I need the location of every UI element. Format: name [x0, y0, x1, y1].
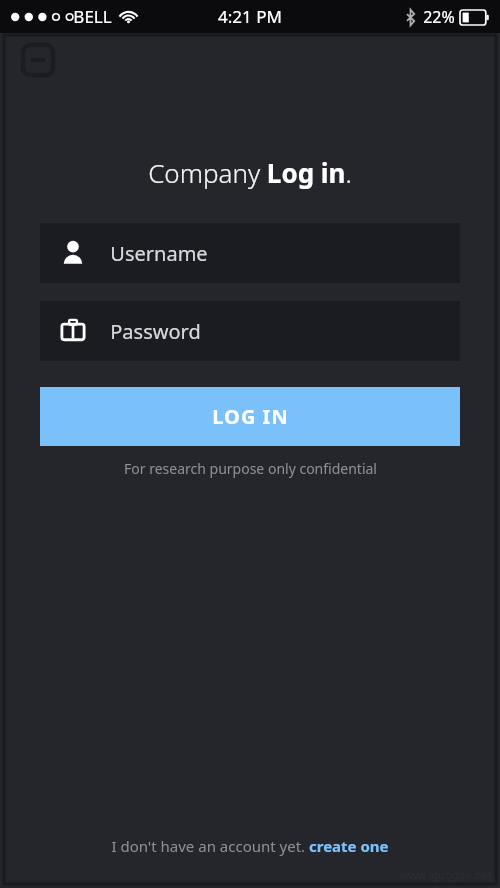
button[interactable]: LOG IN	[40, 387, 460, 446]
staticText: Username	[110, 240, 208, 267]
staticText: BELL	[73, 5, 112, 28]
button[interactable]: Password	[40, 301, 460, 361]
staticText: Password	[110, 318, 201, 345]
button[interactable]: Username	[40, 223, 460, 283]
staticText: 4:21 PM	[218, 5, 282, 28]
button[interactable]: Collapse	[19, 41, 57, 79]
staticText: For research purpose only confidential	[124, 459, 377, 478]
staticText: LOG IN	[212, 403, 289, 430]
staticText: 22%	[423, 6, 455, 28]
staticText: I don't have an account yet. create one	[111, 836, 389, 856]
button[interactable]: I don't have an account yet. create one	[111, 836, 389, 856]
staticText: Company Log in.	[148, 155, 352, 190]
